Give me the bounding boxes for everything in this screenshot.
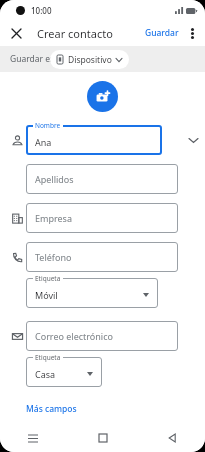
button[interactable] xyxy=(26,278,158,308)
staticText: Teléfono xyxy=(35,251,72,263)
staticText: Móvil xyxy=(35,289,58,301)
button[interactable]: Apellidos xyxy=(26,164,178,194)
staticText: Correo electrónico xyxy=(35,330,113,342)
button[interactable]: Empresa xyxy=(26,203,178,233)
button[interactable]: Guardar xyxy=(142,24,182,42)
staticText: Nombre xyxy=(35,121,61,130)
button[interactable]: Teléfono xyxy=(26,242,178,272)
staticText: Guardar xyxy=(145,27,179,39)
button[interactable]: Más campos xyxy=(23,401,80,417)
staticText: Crear contacto xyxy=(37,26,113,41)
staticText: Casa xyxy=(35,368,56,380)
staticText: Dispositivo xyxy=(68,54,112,66)
button[interactable]: Back xyxy=(161,427,183,449)
button[interactable]: Expand name fields xyxy=(183,130,203,150)
button[interactable] xyxy=(26,125,162,155)
staticText: Apellidos xyxy=(35,173,74,185)
staticText: Más campos xyxy=(26,403,77,415)
button[interactable]: More options xyxy=(182,23,202,43)
staticText: Guardar en xyxy=(10,53,56,65)
button[interactable]: Add photo xyxy=(87,81,118,112)
button[interactable]: Dispositivo xyxy=(50,50,129,69)
button[interactable] xyxy=(26,357,102,387)
button[interactable]: Home xyxy=(92,427,114,449)
staticText: Etiqueta xyxy=(35,274,61,283)
staticText: Etiqueta xyxy=(35,353,61,362)
staticText: 10:00 xyxy=(31,5,52,16)
button[interactable]: Correo electrónico xyxy=(26,321,178,351)
staticText: Empresa xyxy=(35,212,72,224)
staticText: Ana xyxy=(35,136,52,148)
button[interactable]: Close xyxy=(5,22,27,44)
button[interactable]: Recents xyxy=(22,427,44,449)
